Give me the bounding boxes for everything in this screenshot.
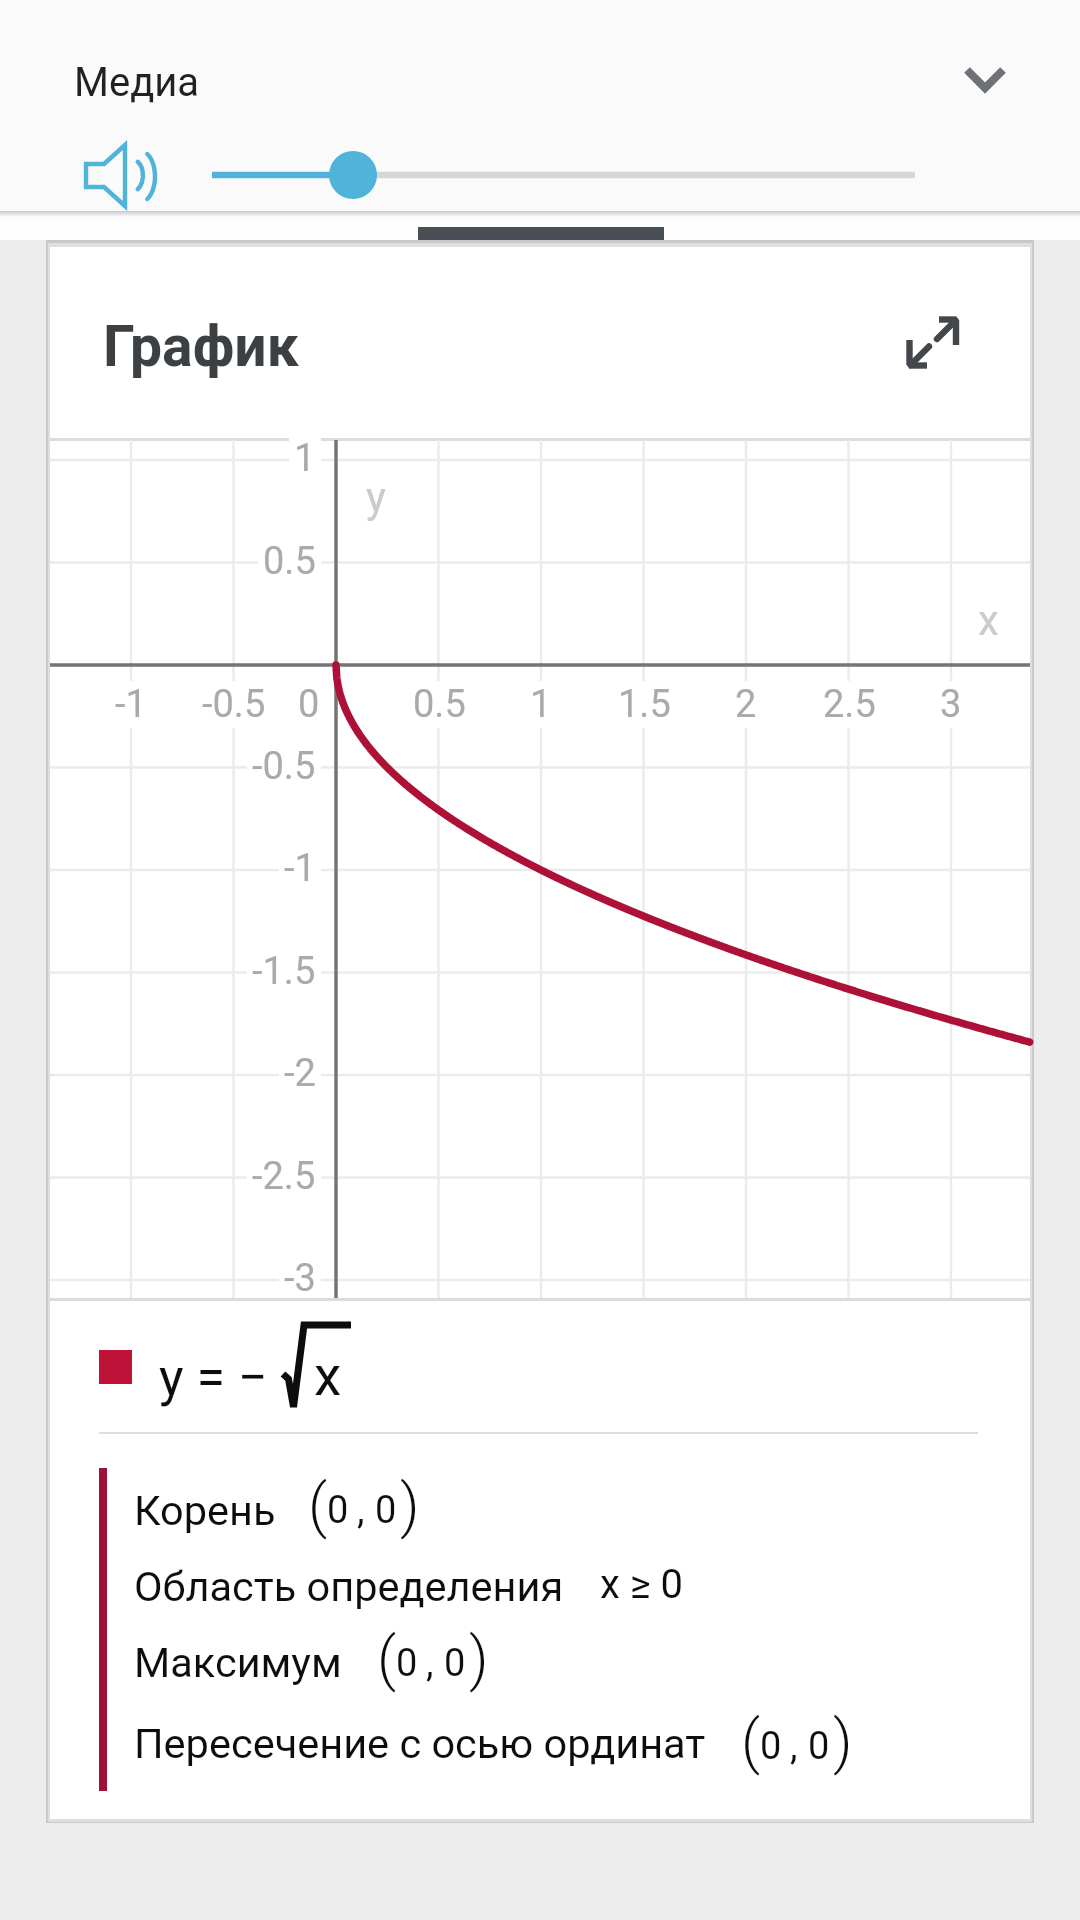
staticText: 2	[735, 682, 757, 727]
staticText: 1	[530, 682, 552, 727]
staticText: -0.5	[252, 744, 316, 789]
staticText: y	[366, 473, 386, 522]
staticText: График	[103, 313, 299, 380]
staticText: -1.5	[252, 949, 316, 994]
staticText: 3	[940, 682, 962, 727]
staticText: -1	[284, 846, 316, 891]
button[interactable]: Развернуть	[893, 297, 979, 383]
staticText: (	[308, 1470, 328, 1540]
staticText: )	[469, 1623, 489, 1693]
staticText: -2.5	[252, 1154, 316, 1199]
staticText: Медиа	[74, 59, 200, 106]
staticText: x	[314, 1344, 342, 1408]
staticText: 0	[327, 1488, 349, 1533]
staticText: )	[833, 1706, 853, 1776]
button[interactable]: Регулятор громкости	[180, 140, 950, 210]
button[interactable]: Свернуть	[940, 32, 1032, 124]
staticText: 0	[760, 1724, 782, 1769]
staticText: -1	[115, 682, 147, 727]
staticText: 0	[396, 1641, 418, 1686]
staticText: ,	[426, 1641, 434, 1686]
staticText: 0.5	[413, 682, 466, 727]
staticText: (	[741, 1706, 761, 1776]
staticText: 0	[444, 1641, 466, 1686]
staticText: ,	[790, 1724, 798, 1769]
staticText: x ≥ 0	[600, 1561, 684, 1608]
staticText: x	[978, 596, 999, 645]
button[interactable]: Громкость	[76, 134, 168, 218]
staticText: -3	[284, 1256, 316, 1301]
staticText: 0	[298, 682, 320, 727]
staticText: 0.5	[263, 539, 316, 584]
staticText: -2	[284, 1051, 316, 1096]
staticText: -0.5	[202, 682, 266, 727]
staticText: Пересечение с осью ординат	[134, 1719, 706, 1768]
staticText: y = −	[159, 1347, 268, 1408]
staticText: Корень	[134, 1486, 276, 1535]
staticText: 1.5	[618, 682, 671, 727]
staticText: (	[377, 1623, 397, 1693]
staticText: ,	[357, 1488, 365, 1533]
staticText: )	[400, 1470, 420, 1540]
staticText: Область определения	[134, 1562, 564, 1611]
staticText: 0	[375, 1488, 397, 1533]
button[interactable]: График	[50, 247, 1030, 440]
staticText: Максимум	[134, 1638, 342, 1687]
staticText: 0	[808, 1724, 830, 1769]
staticText: 1	[294, 436, 316, 481]
staticText: 2.5	[823, 682, 876, 727]
